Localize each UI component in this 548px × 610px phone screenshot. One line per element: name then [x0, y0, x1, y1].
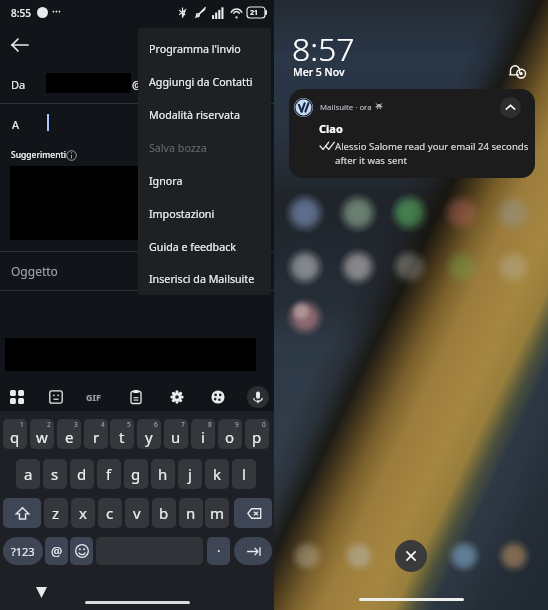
button[interactable]: Inserisci da Mailsuite	[138, 264, 271, 295]
button[interactable]: Salva bozza	[138, 132, 271, 165]
button[interactable]: x	[71, 498, 95, 528]
staticText: w	[36, 427, 48, 447]
staticText: Oggetto	[11, 263, 58, 279]
button[interactable]: c	[98, 498, 122, 528]
button[interactable]: s	[43, 459, 67, 489]
button[interactable]: Voice input	[247, 386, 269, 408]
button[interactable]: ?123	[3, 537, 43, 565]
staticText: Inserisci da Mailsuite	[149, 272, 255, 287]
staticText: s	[51, 464, 59, 484]
staticText: 1	[20, 420, 24, 429]
staticText: k	[213, 464, 222, 484]
button[interactable]: k	[205, 459, 229, 489]
button[interactable]: Guida e feedback	[138, 231, 271, 264]
staticText: A	[12, 117, 20, 132]
button[interactable]: l	[232, 459, 256, 489]
button[interactable]: e	[57, 419, 81, 449]
staticText: i	[201, 427, 205, 447]
staticText: c	[106, 503, 114, 523]
staticText: p	[252, 427, 262, 447]
staticText: Mailsuite · ora	[320, 102, 372, 113]
staticText: d	[77, 464, 87, 484]
staticText: Impostazioni	[149, 207, 215, 222]
staticText: Suggerimenti	[11, 149, 67, 161]
staticText: Salva bozza	[149, 141, 207, 156]
button[interactable]: o	[218, 419, 242, 449]
button[interactable]: Emoji	[70, 537, 93, 565]
staticText: Programma l'invio	[149, 42, 241, 57]
button[interactable]: b	[152, 498, 176, 528]
staticText: a	[24, 464, 33, 484]
staticText: @	[51, 543, 63, 560]
button[interactable]: Programma l'invio	[138, 33, 271, 66]
button[interactable]: @	[45, 537, 68, 565]
button[interactable]: Shift	[3, 498, 41, 528]
staticText: e	[65, 427, 74, 447]
button[interactable]: h	[151, 459, 175, 489]
button[interactable]: Collapse	[500, 97, 521, 118]
staticText: 5	[127, 420, 131, 429]
staticText: Modalità riservata	[149, 108, 240, 123]
button[interactable]: t	[110, 419, 134, 449]
button[interactable]: Back	[5, 30, 35, 60]
staticText: 4	[101, 420, 105, 429]
staticText: Alessio Salome read your email 24 second…	[335, 140, 534, 166]
staticText: ···	[52, 3, 61, 18]
staticText: m	[210, 503, 225, 523]
button[interactable]: i	[191, 419, 215, 449]
staticText: Da	[11, 77, 26, 92]
staticText: v	[133, 503, 141, 523]
button[interactable]: a	[16, 459, 40, 489]
button[interactable]: .	[207, 537, 230, 565]
button[interactable]: Impostazioni	[138, 198, 271, 231]
button[interactable]: v	[125, 498, 149, 528]
staticText: j	[188, 464, 192, 484]
button[interactable]: n	[179, 498, 203, 528]
button[interactable]: Mailsuite · ora	[289, 89, 535, 178]
staticText: 8	[208, 420, 212, 429]
button[interactable]: u	[164, 419, 188, 449]
button[interactable]: Close	[395, 540, 427, 572]
staticText: n	[186, 503, 196, 523]
button[interactable]: y	[137, 419, 161, 449]
staticText: 7	[181, 420, 185, 429]
button[interactable]: Backspace	[234, 498, 272, 528]
button[interactable]: Enter	[234, 537, 272, 565]
staticText: Ignora	[149, 174, 183, 189]
staticText: h	[158, 464, 168, 484]
staticText: t	[119, 427, 125, 447]
staticText: ?123	[11, 544, 35, 559]
button[interactable]: Ignora	[138, 165, 271, 198]
button[interactable]: Aggiungi da Contatti	[138, 66, 271, 99]
button[interactable]: j	[178, 459, 202, 489]
staticText: 8:55	[11, 6, 31, 20]
staticText: b	[159, 503, 169, 523]
staticText: .	[217, 538, 221, 556]
staticText: Guida e feedback	[149, 240, 237, 255]
button[interactable]: w	[30, 419, 54, 449]
staticText: r	[93, 427, 100, 447]
staticText: u	[171, 427, 181, 447]
button[interactable]: g	[124, 459, 148, 489]
button[interactable]: z	[44, 498, 68, 528]
staticText: f	[106, 464, 112, 484]
button[interactable]: f	[97, 459, 121, 489]
staticText: 2	[47, 420, 51, 429]
button[interactable]: Notification settings	[504, 58, 530, 84]
button[interactable]: q	[3, 419, 27, 449]
staticText: x	[79, 503, 87, 523]
button[interactable]: Modalità riservata	[138, 99, 271, 132]
button[interactable]: r	[84, 419, 108, 449]
button[interactable]: d	[70, 459, 94, 489]
staticText: @	[132, 77, 142, 92]
staticText: z	[52, 503, 60, 523]
staticText: y	[145, 427, 153, 447]
staticText: 21	[250, 8, 259, 18]
staticText: l	[242, 464, 246, 484]
button[interactable]: m	[205, 498, 229, 528]
staticText: 6	[154, 420, 158, 429]
button[interactable]: p	[245, 419, 269, 449]
staticText: 3	[74, 420, 78, 429]
staticText: Aggiungi da Contatti	[149, 75, 253, 90]
